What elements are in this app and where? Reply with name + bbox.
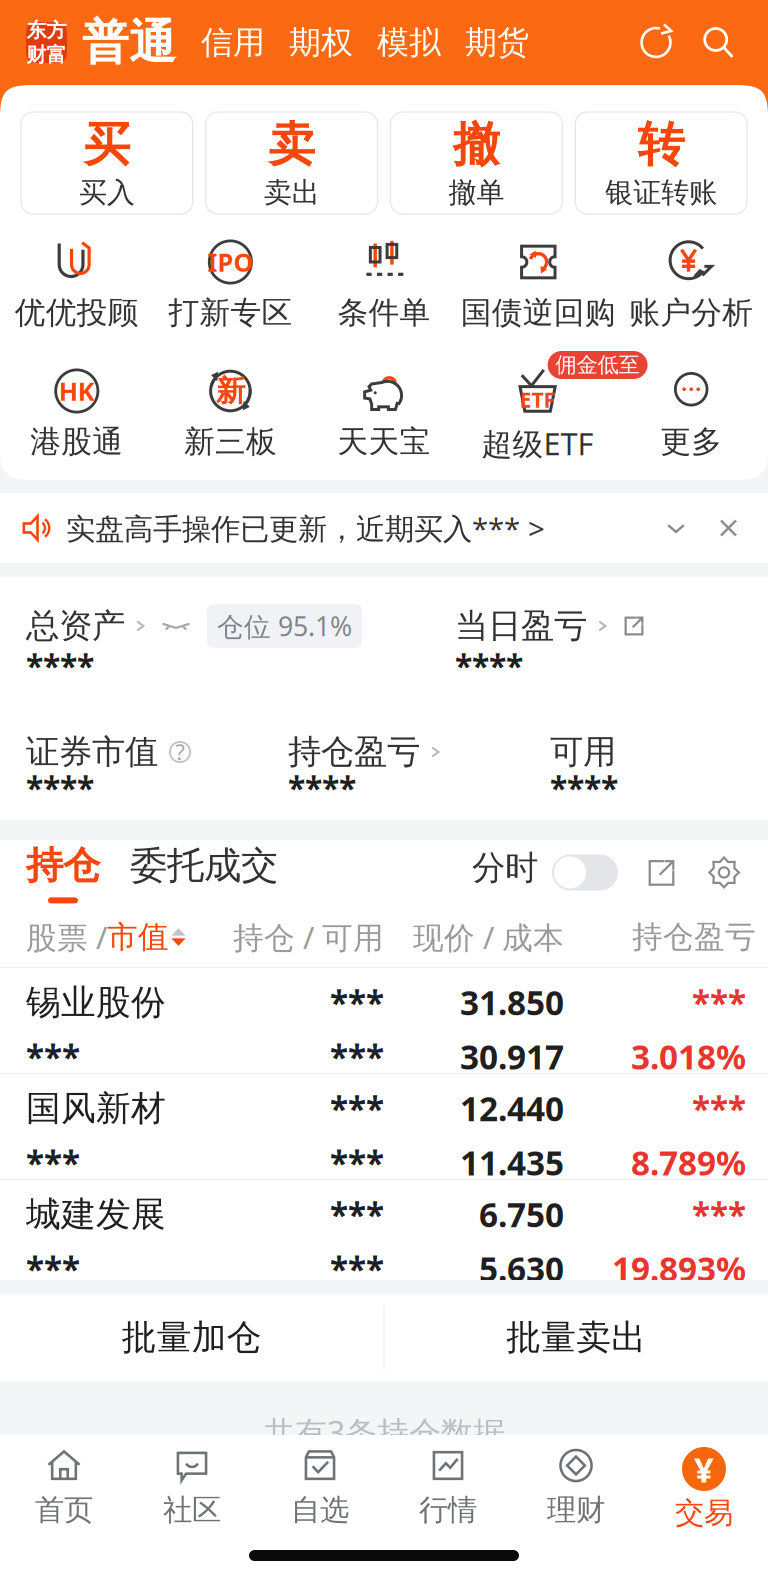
staticText: 卖 <box>268 116 315 173</box>
button[interactable]: 转 <box>575 112 747 214</box>
button[interactable]: 撤 <box>390 112 562 214</box>
staticText: 国风新材 <box>26 1087 166 1130</box>
button[interactable]: 股票 / <box>0 917 187 957</box>
button[interactable]: 信用 <box>189 23 277 62</box>
staticText: 转 <box>638 116 685 173</box>
button[interactable]: 批量加仓 <box>0 1294 383 1381</box>
button[interactable]: 实盘高手操作已更新，近期买入*** > <box>0 493 768 563</box>
button[interactable]: 模拟 <box>365 23 453 62</box>
button[interactable]: 国风新材 <box>0 1074 768 1179</box>
staticText: *** <box>330 980 384 1024</box>
button[interactable]: 优优投顾 <box>0 241 154 333</box>
button[interactable]: 持仓 <box>0 843 100 903</box>
button[interactable]: 委托成交 <box>100 843 278 903</box>
staticText: 撤 <box>453 116 500 173</box>
staticText: 锡业股份 <box>26 981 166 1024</box>
button[interactable]: 首页 <box>0 1447 128 1539</box>
staticText: 31.850 <box>460 980 564 1024</box>
staticText: 行情 <box>419 1492 477 1528</box>
staticText: 更多 <box>660 423 722 461</box>
staticText: 国债逆回购 <box>461 294 616 332</box>
staticText: 共有3条持仓数据 <box>263 1411 505 1453</box>
staticText: 卖出 <box>264 175 320 210</box>
button[interactable]: 设置 <box>677 855 741 903</box>
staticText: 分时 <box>472 847 538 888</box>
staticText: 超级ETF <box>482 423 594 464</box>
button[interactable]: 账户分析 <box>614 241 768 333</box>
staticText: 30.917 <box>460 1034 564 1079</box>
staticText: 证券市值 <box>26 731 158 772</box>
button[interactable]: 期权 <box>277 23 365 62</box>
button[interactable]: 证券市值 <box>0 733 288 809</box>
staticText: 撤单 <box>448 175 504 210</box>
staticText: 社区 <box>163 1492 221 1528</box>
button[interactable]: 条件单 <box>307 241 461 333</box>
button[interactable]: 城建发展 <box>0 1180 768 1285</box>
button[interactable]: 自选 <box>256 1447 384 1539</box>
staticText: 可用 <box>550 731 616 772</box>
staticText: *** <box>692 1192 746 1236</box>
staticText: ? <box>175 738 184 766</box>
button[interactable]: ETF <box>461 370 614 462</box>
staticText: 期权 <box>289 23 353 62</box>
button[interactable]: 卖 <box>206 112 378 214</box>
button[interactable]: 当日盈亏 <box>455 603 768 687</box>
button[interactable]: 普通 <box>67 14 176 71</box>
staticText: 普通 <box>82 14 176 71</box>
staticText: IPO <box>207 245 253 279</box>
staticText: *** <box>330 1034 384 1079</box>
staticText: 账户分析 <box>629 294 753 332</box>
button[interactable]: 锡业股份 <box>0 968 768 1073</box>
staticText: *** <box>692 1086 746 1130</box>
staticText: 天天宝 <box>337 423 430 461</box>
staticText: 当日盈亏 <box>455 605 587 646</box>
button[interactable]: 理财 <box>512 1447 640 1539</box>
staticText: *** <box>330 1192 384 1236</box>
staticText: 期货 <box>465 23 529 62</box>
button[interactable]: 国债逆回购 <box>461 241 614 333</box>
staticText: 优优投顾 <box>15 294 139 332</box>
button[interactable]: 刷新 <box>637 23 675 61</box>
staticText: 3.018% <box>631 1034 746 1079</box>
staticText: *** <box>26 1246 80 1291</box>
button[interactable]: IPO <box>154 241 307 333</box>
button[interactable]: 行情 <box>384 1447 512 1539</box>
staticText: HK <box>59 374 95 408</box>
staticText: 委托成交 <box>130 843 278 888</box>
staticText: 持仓盈亏 <box>288 731 420 772</box>
staticText: 城建发展 <box>26 1193 166 1236</box>
button[interactable]: 更多 <box>614 370 768 462</box>
button[interactable]: 买 <box>21 112 193 214</box>
staticText: 银证转账 <box>605 175 717 210</box>
staticText: 持仓盈亏 <box>632 918 756 956</box>
staticText: 股票 / <box>26 917 107 957</box>
staticText: 模拟 <box>377 23 441 62</box>
button[interactable]: 期货 <box>453 23 541 62</box>
staticText: 交易 <box>675 1495 733 1531</box>
staticText: 仓位 95.1% <box>217 608 352 644</box>
button[interactable]: 总资产 <box>0 603 362 687</box>
button[interactable]: HK <box>0 370 154 462</box>
staticText: 市值 <box>107 918 169 956</box>
staticText: 批量卖出 <box>506 1316 646 1359</box>
staticText: **** <box>26 644 94 687</box>
button[interactable]: 批量卖出 <box>384 1294 768 1381</box>
staticText: 5.630 <box>479 1246 564 1291</box>
button[interactable]: 新 <box>154 370 307 462</box>
staticText: *** <box>692 980 746 1024</box>
staticText: 东方 <box>26 18 66 42</box>
button[interactable]: 搜索 <box>699 23 737 61</box>
staticText: *** <box>330 1140 384 1185</box>
button[interactable]: 分享 <box>618 857 677 903</box>
staticText: 现价 / 成本 <box>413 917 564 957</box>
staticText: 条件单 <box>337 294 430 332</box>
button[interactable]: 持仓盈亏 <box>288 733 550 809</box>
button[interactable]: 天天宝 <box>307 370 461 462</box>
staticText: 12.440 <box>460 1086 564 1130</box>
staticText: 8.789% <box>631 1140 746 1185</box>
button[interactable]: 社区 <box>128 1447 256 1539</box>
button[interactable]: 分时开关 <box>538 854 618 903</box>
staticText: **** <box>26 766 94 809</box>
button[interactable]: ¥ <box>640 1447 768 1539</box>
button[interactable]: 东方财富 <box>26 22 67 63</box>
